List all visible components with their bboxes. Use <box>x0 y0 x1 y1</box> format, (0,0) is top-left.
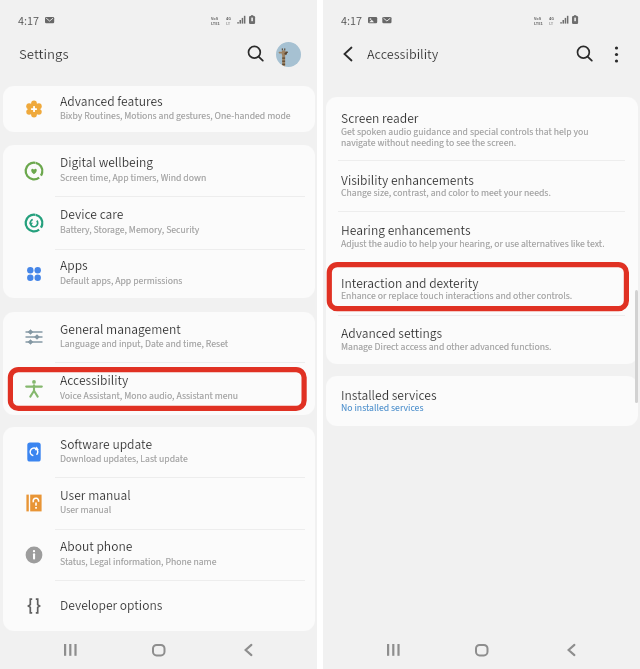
staticText: Advanced features <box>60 92 163 111</box>
staticText: No installed services <box>341 401 424 415</box>
staticText: Status, Legal information, Phone name <box>60 555 217 569</box>
staticText: Hearing enhancements <box>341 221 471 240</box>
button[interactable]: Home <box>135 631 183 669</box>
staticText: Installed services <box>341 386 437 405</box>
staticText: Screen reader <box>341 109 419 128</box>
button[interactable]: Search <box>570 39 600 69</box>
staticText: Battery, Storage, Memory, Security <box>60 223 200 237</box>
staticText: Software update <box>60 435 153 454</box>
button[interactable]: Profile <box>276 42 301 67</box>
button[interactable]: Back <box>224 631 272 669</box>
staticText: Screen time, App timers, Wind down <box>60 171 207 185</box>
staticText: About phone <box>60 537 133 556</box>
staticText: 4:17 <box>341 13 363 30</box>
staticText: Bixby Routines, Motions and gestures, On… <box>60 109 291 123</box>
button[interactable]: Back <box>333 39 363 69</box>
button[interactable]: Software update <box>3 427 315 477</box>
button[interactable]: About phone <box>3 529 315 580</box>
button[interactable]: Apps <box>3 249 315 298</box>
button[interactable]: Visibility enhancements <box>326 160 638 212</box>
button[interactable]: General management <box>3 312 315 362</box>
staticText: Visibility enhancements <box>341 171 474 190</box>
button[interactable]: Device care <box>3 196 315 249</box>
staticText: LTE1 <box>211 20 220 26</box>
staticText: Get spoken audio guidance and special co… <box>341 125 589 150</box>
staticText: Apps <box>60 256 88 275</box>
staticText: General management <box>60 320 181 339</box>
button[interactable]: Hearing enhancements <box>326 211 638 262</box>
button[interactable]: Advanced features <box>3 86 315 132</box>
staticText: Manage Direct access and other advanced … <box>341 340 552 354</box>
staticText: LTE1 <box>534 20 543 26</box>
button[interactable]: Accessibility <box>3 362 315 415</box>
button[interactable]: Search <box>241 39 271 69</box>
staticText: VoS <box>211 15 219 21</box>
staticText: Interaction and dexterity <box>341 274 479 293</box>
staticText: LT <box>226 20 231 26</box>
staticText: Developer options <box>60 596 163 615</box>
button[interactable]: Recents <box>369 631 417 669</box>
staticText: VoS <box>534 15 542 21</box>
staticText: Default apps, App permissions <box>60 274 183 288</box>
button[interactable]: Digital wellbeing <box>3 145 315 196</box>
staticText: Adjust the audio to help your hearing, o… <box>341 237 605 251</box>
staticText: Device care <box>60 205 124 224</box>
staticText: 4:17 <box>18 13 40 30</box>
staticText: User manual <box>60 503 112 517</box>
button[interactable]: Advanced settings <box>326 315 638 364</box>
button[interactable]: Home <box>458 631 506 669</box>
button[interactable]: Recents <box>46 631 94 669</box>
button[interactable]: More options <box>601 39 631 69</box>
staticText: 4G <box>226 15 232 21</box>
staticText: Advanced settings <box>341 324 443 343</box>
button[interactable]: Screen reader <box>326 97 638 160</box>
staticText: Accessibility <box>367 45 439 65</box>
button[interactable]: Developer options <box>3 580 315 631</box>
staticText: Voice Assistant, Mono audio, Assistant m… <box>60 389 239 403</box>
button[interactable]: Installed services <box>326 376 638 426</box>
staticText: Change size, contrast, and color to meet… <box>341 186 551 200</box>
staticText: 4G <box>549 15 555 21</box>
staticText: Accessibility <box>60 371 129 390</box>
button[interactable]: User manual <box>3 477 315 529</box>
staticText: Digital wellbeing <box>60 153 154 172</box>
staticText: Language and input, Date and time, Reset <box>60 337 229 351</box>
staticText: User manual <box>60 486 131 505</box>
button[interactable]: Interaction and dexterity <box>326 263 638 315</box>
staticText: LT <box>549 20 554 26</box>
staticText: Enhance or replace touch interactions an… <box>341 289 573 303</box>
button[interactable]: Back <box>547 631 595 669</box>
staticText: Settings <box>19 44 69 65</box>
staticText: Download updates, Last update <box>60 452 188 466</box>
